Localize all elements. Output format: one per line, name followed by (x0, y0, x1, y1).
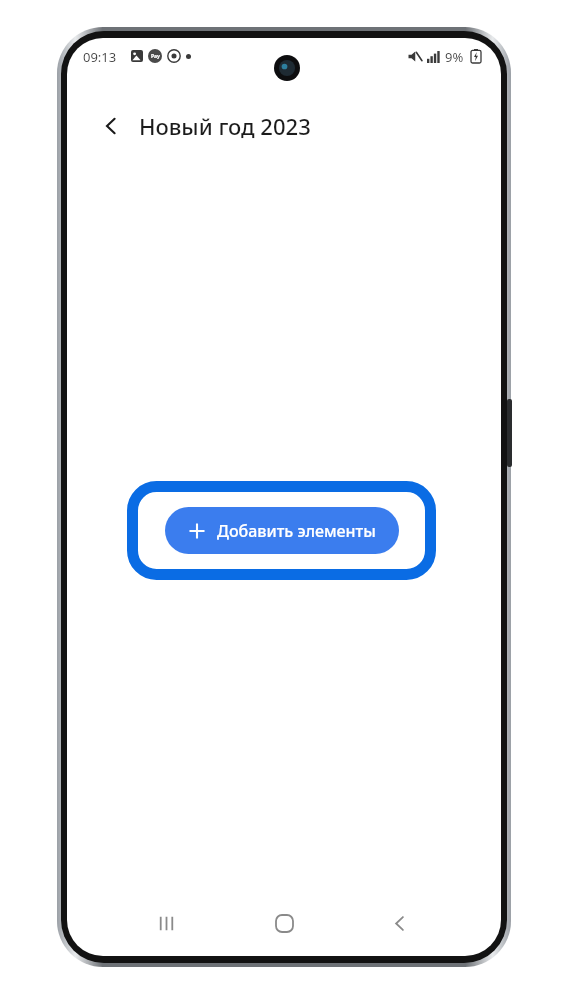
staticText: Новый год 2023 (139, 111, 311, 141)
staticText: 09:13 (83, 48, 117, 66)
button[interactable]: Добавить элементы (165, 507, 399, 554)
staticText: Pay (151, 53, 160, 60)
button[interactable]: Recents (142, 899, 190, 947)
button[interactable]: Back (375, 899, 423, 947)
button[interactable]: Back (95, 110, 127, 142)
button[interactable]: Home (260, 899, 308, 947)
staticText: 9% (445, 48, 464, 66)
staticText: Добавить элементы (217, 520, 376, 542)
